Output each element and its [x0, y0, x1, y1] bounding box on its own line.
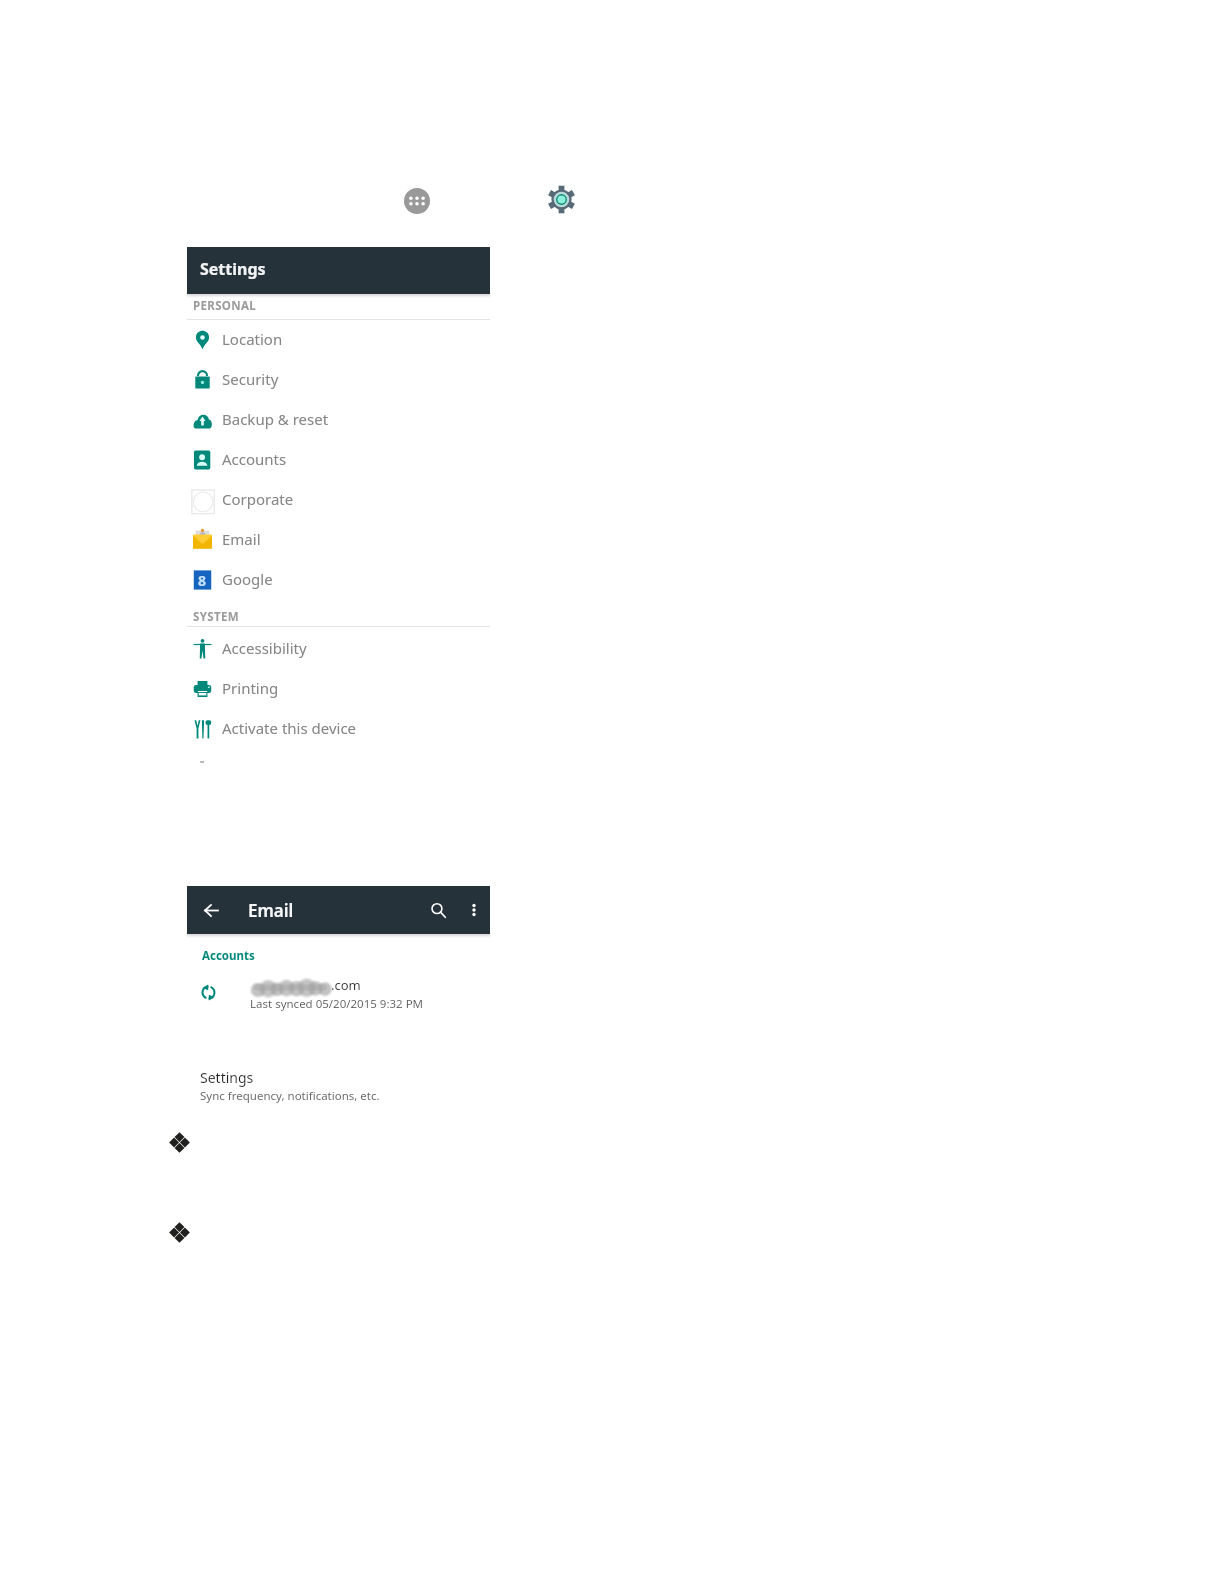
button[interactable]: Email	[187, 520, 490, 560]
button[interactable]: Search	[418, 886, 458, 934]
staticText: Email	[248, 899, 294, 922]
staticText: .com	[331, 976, 361, 994]
staticText: Location	[222, 329, 283, 349]
button[interactable]: Navigate up	[187, 886, 236, 934]
staticText: SYSTEM	[193, 609, 239, 625]
button[interactable]: Accounts	[187, 440, 490, 480]
staticText: 8	[198, 571, 207, 590]
button[interactable]: Settings	[547, 185, 576, 214]
staticText: Settings	[200, 1068, 254, 1087]
button[interactable]: Security	[187, 360, 490, 400]
staticText: Printing	[222, 678, 279, 698]
staticText: Last synced 05/20/2015 9:32 PM	[250, 996, 424, 1011]
button[interactable]: More options	[458, 886, 490, 934]
button[interactable]: Activate this device	[187, 709, 490, 749]
staticText: Accounts	[222, 449, 287, 469]
staticText: Email	[222, 529, 261, 549]
staticText: Security	[222, 369, 279, 389]
staticText: Activate this device	[222, 718, 357, 738]
staticText: Google	[222, 569, 273, 589]
button[interactable]: Printing	[187, 669, 490, 709]
staticText: Accounts	[202, 948, 255, 964]
button[interactable]: Backup & reset	[187, 400, 490, 440]
staticText: Settings	[200, 258, 266, 280]
button[interactable]: All apps	[404, 188, 430, 214]
button[interactable]: 8	[187, 560, 490, 600]
button[interactable]: Settings	[187, 1068, 490, 1106]
button[interactable]: Location	[187, 320, 490, 360]
staticText: Sync frequency, notifications, etc.	[200, 1088, 380, 1104]
staticText: Backup & reset	[222, 409, 329, 429]
button[interactable]: Accessibility	[187, 629, 490, 669]
button[interactable]: Corporate	[187, 480, 490, 520]
staticText: Corporate	[222, 489, 294, 509]
staticText: Accessibility	[222, 638, 307, 658]
staticText: PERSONAL	[193, 298, 257, 314]
button[interactable]: .com	[187, 977, 490, 1011]
